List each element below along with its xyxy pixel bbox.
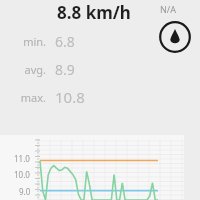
button[interactable]: avg. [0,56,200,82]
staticText: 6.8 [55,32,75,51]
staticText: avg. [0,62,46,77]
staticText: 10.0 [14,169,30,180]
staticText: N/A [160,3,176,15]
staticText: 8.9 [55,60,75,79]
button[interactable] [0,135,184,200]
staticText: 9.0 [19,186,31,197]
button[interactable]: max. [0,84,200,110]
button[interactable]: Speed sensor [158,20,192,54]
button[interactable]: min. [0,28,200,54]
staticText: 8.8 km/h [57,1,131,24]
staticText: min. [0,34,46,49]
staticText: 11.0 [14,153,30,164]
staticText: max. [0,90,46,105]
staticText: 10.8 [55,87,85,107]
